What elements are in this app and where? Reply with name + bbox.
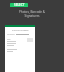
staticText: PURCHASE ORDER	[12, 29, 29, 32]
staticText: Photos, Barcode &	[19, 10, 45, 14]
button[interactable]: SELECT	[10, 3, 28, 7]
staticText: Item	[7, 38, 11, 40]
staticText: SELECT	[14, 3, 25, 7]
button[interactable]: PURCHASE ORDER	[5, 25, 35, 72]
staticText: Signatures	[24, 14, 40, 18]
staticText: Customer	[7, 33, 15, 35]
